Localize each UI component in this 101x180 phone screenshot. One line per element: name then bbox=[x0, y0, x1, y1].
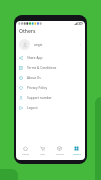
button[interactable]: angie bbox=[16, 36, 85, 53]
button[interactable]: Terms & Conditions bbox=[16, 63, 85, 73]
button[interactable]: Orders bbox=[51, 144, 68, 156]
staticText: About Us bbox=[27, 76, 41, 80]
button[interactable]: Support number bbox=[16, 93, 85, 103]
button[interactable]: Share App bbox=[16, 53, 85, 63]
button[interactable]: Privacy Policy bbox=[16, 83, 85, 93]
staticText: Privacy Policy bbox=[27, 86, 48, 90]
staticText: Support number bbox=[27, 96, 52, 100]
button[interactable]: Home bbox=[16, 144, 34, 156]
staticText: Others bbox=[19, 28, 36, 35]
staticText: Others bbox=[73, 152, 81, 155]
staticText: Home bbox=[22, 152, 29, 155]
button[interactable]: About Us bbox=[16, 73, 85, 83]
staticText: Cart bbox=[40, 152, 45, 155]
staticText: Terms & Conditions bbox=[27, 66, 57, 70]
staticText: Share App bbox=[27, 56, 43, 60]
staticText: Orders bbox=[56, 152, 64, 155]
staticText: angie bbox=[34, 43, 43, 47]
button[interactable]: Others bbox=[68, 144, 85, 156]
staticText: Logout bbox=[27, 106, 38, 110]
button[interactable]: Cart bbox=[34, 144, 51, 156]
button[interactable]: Logout bbox=[16, 103, 85, 113]
